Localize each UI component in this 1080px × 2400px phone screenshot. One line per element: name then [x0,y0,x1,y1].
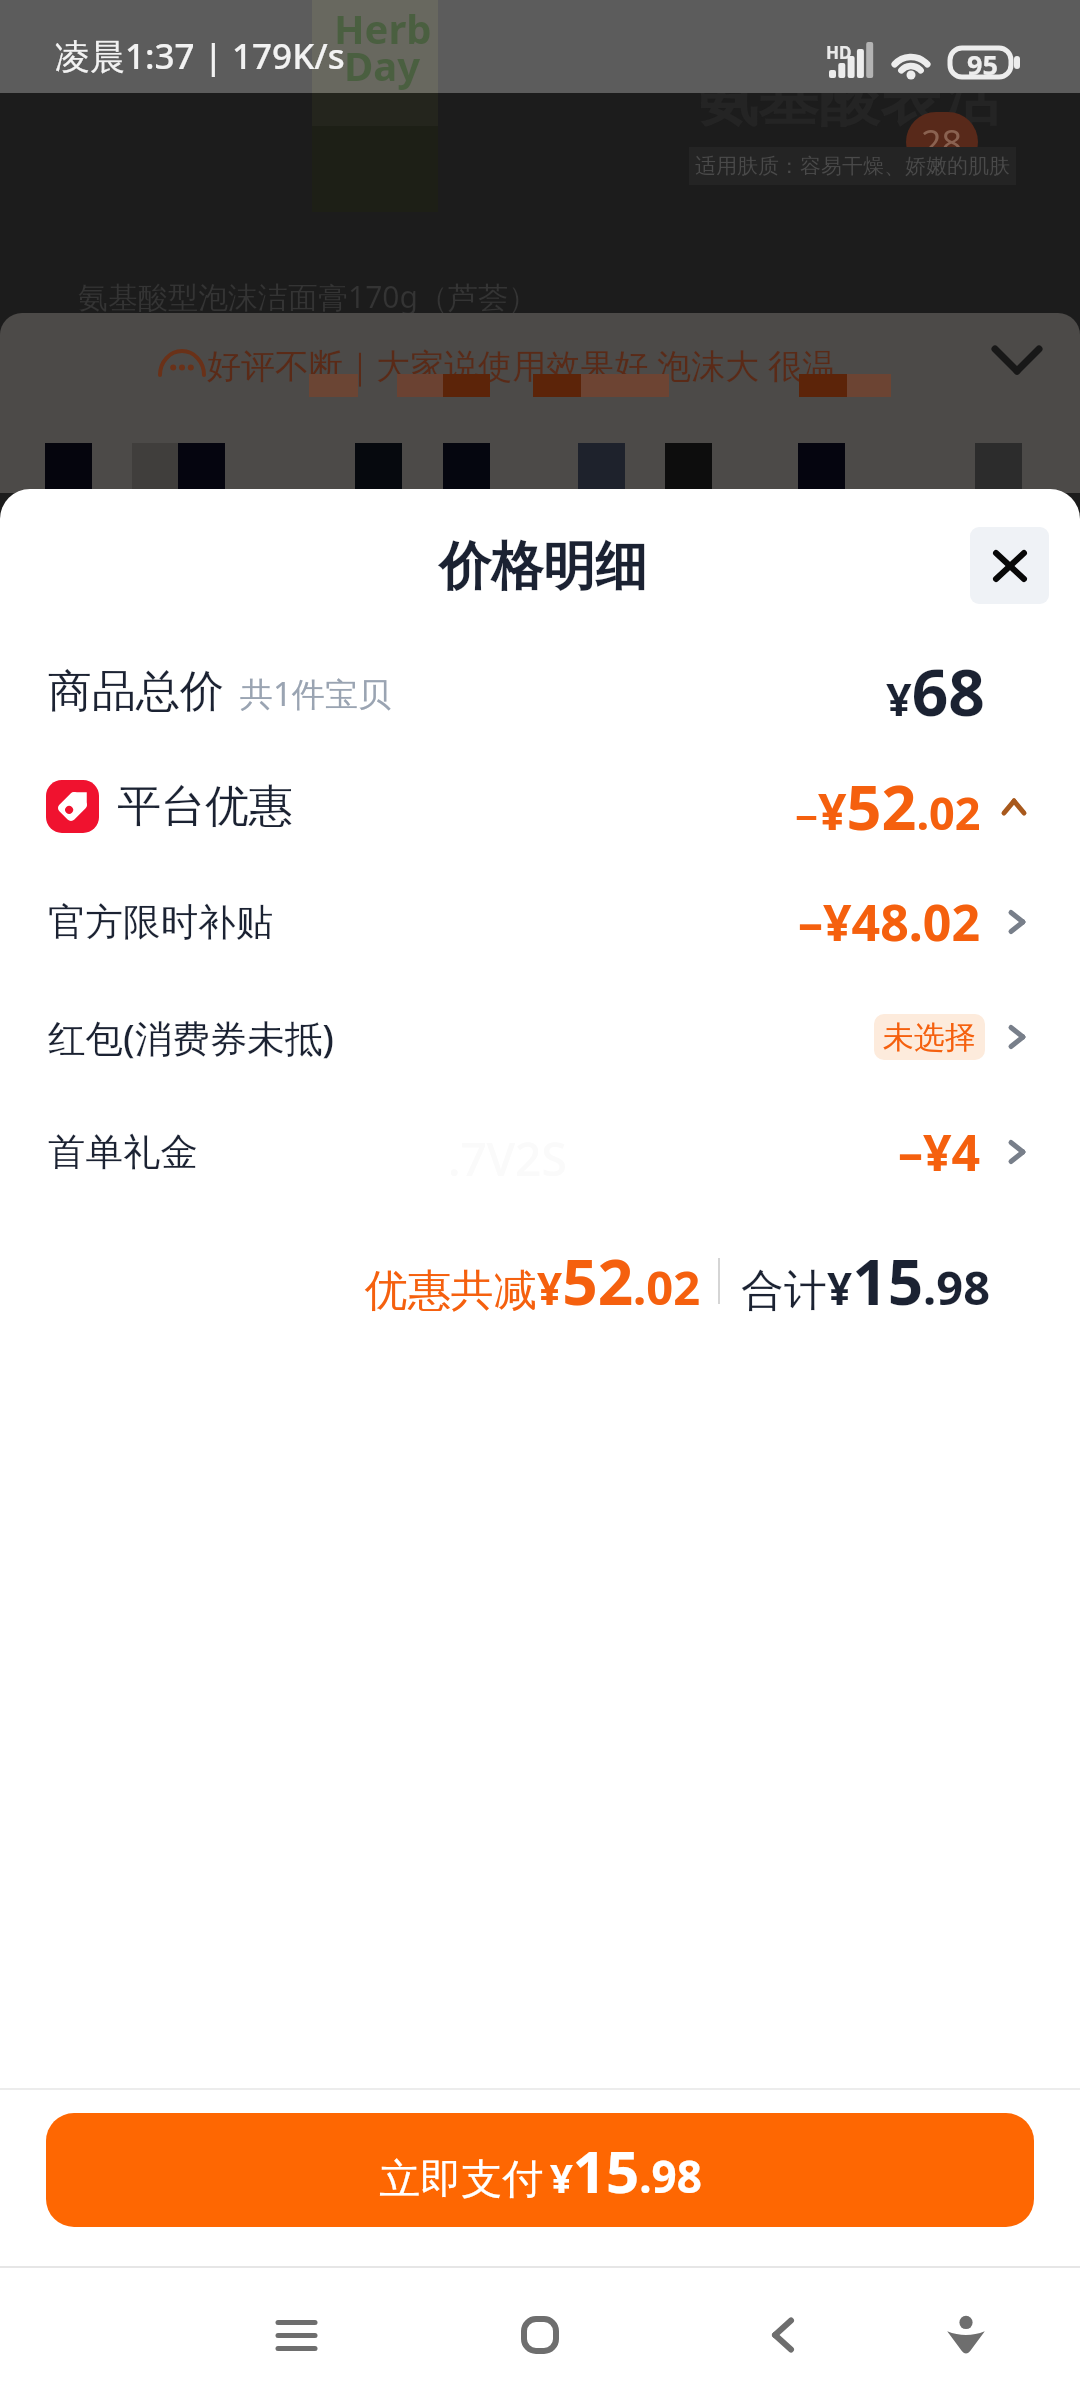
staticText: –¥52.02 [795,765,981,848]
staticText: 官方限时补贴 [48,899,273,946]
button[interactable]: 红包(消费券未抵) [0,993,1080,1081]
staticText: 氨基酸表活 [697,60,1002,137]
staticText: 立即支付 ¥15.98 [379,2131,702,2210]
other: 更多 [1007,909,1026,935]
staticText: ¥68 [886,648,985,735]
button[interactable]: 语音助手 [911,2280,1021,2390]
staticText: 28 [921,118,963,167]
button[interactable]: 官方限时补贴 [0,878,1080,966]
staticText: 首单礼金 [48,1129,198,1176]
staticText: 红包(消费券未抵) [48,1012,334,1063]
other: 更多 [1007,1024,1026,1050]
button[interactable]: 返回 [728,2280,838,2390]
other: 更多 [1007,1139,1026,1165]
staticText: HD [826,41,852,64]
button[interactable]: 首单礼金 [0,1108,1080,1196]
button[interactable]: 立即支付 ¥15.98 [46,2113,1034,2227]
staticText: 共1件宝贝 [240,671,391,716]
staticText: –¥4 [898,1118,981,1186]
staticText: 合计¥15.98 [741,1239,991,1323]
button[interactable]: 展开评价 [993,343,1041,377]
button[interactable]: 商品总价 [0,647,1080,735]
other: 收起 [1002,797,1026,817]
staticText: Herb [334,1,432,55]
staticText: 适用肤质：容易干燥、娇嫩的肌肤 [695,153,1010,179]
staticText: 优惠共减¥52.02 [365,1239,701,1323]
staticText: 商品总价 [48,664,224,719]
button[interactable]: 关闭 [970,527,1049,604]
staticText: 氨基酸型泡沫洁面膏170g（芦荟） [78,276,538,317]
button[interactable]: 最近任务 [241,2280,351,2390]
staticText: 未选择 [883,1018,976,1057]
staticText: Day [344,38,421,92]
staticText: –¥48.02 [798,888,981,956]
staticText: 价格明细 [439,534,647,600]
staticText: 好评不断｜大家说使用效果好 泡沫大 很温 [207,342,836,388]
staticText: 95 [967,46,998,83]
button[interactable]: 平台优惠 [0,762,1080,850]
button[interactable]: 主页 [485,2280,595,2390]
staticText: 平台优惠 [117,779,293,834]
staticText: 凌晨1:37 | 179K/s [55,32,345,80]
